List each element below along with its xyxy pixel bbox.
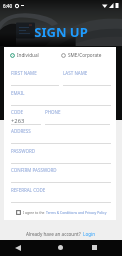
button[interactable]: LAST NAME <box>63 67 111 86</box>
staticText: SME/Corporate <box>68 52 102 58</box>
staticText: ADDRESS <box>11 128 31 134</box>
button[interactable]: REFERRAL CODE <box>11 184 111 203</box>
button[interactable]: Home <box>53 240 68 255</box>
button[interactable]: Individual <box>10 52 58 58</box>
staticText: Login <box>83 231 96 237</box>
staticText: EMAIL <box>11 90 25 96</box>
button[interactable]: CODE <box>11 106 41 125</box>
button[interactable]: Back <box>10 240 25 255</box>
button[interactable]: ADDRESS <box>11 125 111 144</box>
staticText: SIGN UP <box>34 23 88 41</box>
staticText: FIRST NAME <box>11 70 37 76</box>
button[interactable]: PHONE <box>45 106 110 125</box>
button[interactable]: EMAIL <box>11 87 111 106</box>
button[interactable]: FIRST NAME <box>11 67 59 86</box>
staticText: CONFIRM PASSWORD <box>11 167 57 173</box>
button[interactable]: PASSWORD <box>11 145 111 164</box>
staticText: REFERRAL CODE <box>11 187 46 193</box>
staticText: 6:40 <box>3 3 13 9</box>
staticText: PASSWORD <box>11 148 36 154</box>
staticText: PHONE <box>45 109 61 115</box>
staticText: LAST NAME <box>63 70 88 76</box>
staticText: I agree to the <box>23 210 46 215</box>
button[interactable]: SME/Corporate <box>61 52 109 58</box>
staticText: CODE <box>11 109 24 115</box>
button[interactable]: CONFIRM PASSWORD <box>11 164 111 183</box>
button[interactable]: Recent apps <box>87 240 102 255</box>
staticText: Individual <box>17 52 39 58</box>
button[interactable]: I agree to the <box>16 210 107 215</box>
staticText: Already have an account? <box>26 231 81 237</box>
button[interactable]: Login <box>83 231 96 237</box>
staticText: +263 <box>11 117 25 125</box>
staticText: Terms & Conditions and Privacy Policy <box>46 210 107 215</box>
